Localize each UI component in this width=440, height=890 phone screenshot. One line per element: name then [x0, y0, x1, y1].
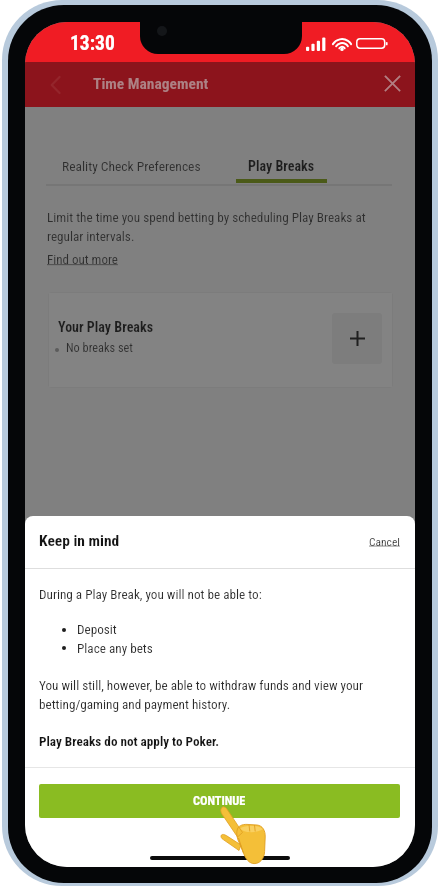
staticText: Deposit [77, 622, 117, 637]
staticText: Place any bets [77, 641, 153, 656]
staticText: Play Breaks do not apply to Poker. [39, 734, 220, 749]
staticText: During a Play Break, you will not be abl… [39, 587, 262, 602]
button[interactable]: Close [371, 62, 413, 104]
staticText: CONTINUE [193, 794, 246, 808]
button[interactable]: Find out more [47, 252, 118, 267]
staticText: Limit the time you spend betting by sche… [47, 210, 379, 245]
button[interactable]: Add play break [332, 313, 382, 364]
staticText: 13:30 [70, 32, 115, 55]
button[interactable]: CONTINUE [39, 784, 400, 818]
staticText: Cancel [369, 535, 400, 548]
button[interactable]: Reality Check Preferences [62, 158, 201, 174]
button[interactable]: Play Breaks [248, 158, 315, 174]
staticText: Keep in mind [39, 532, 120, 550]
staticText: Your Play Breaks [58, 319, 154, 335]
staticText: Time Management [93, 75, 209, 93]
button[interactable]: Cancel [369, 535, 400, 548]
staticText: You will still, however, be able to with… [39, 678, 371, 713]
staticText: No breaks set [66, 341, 133, 355]
